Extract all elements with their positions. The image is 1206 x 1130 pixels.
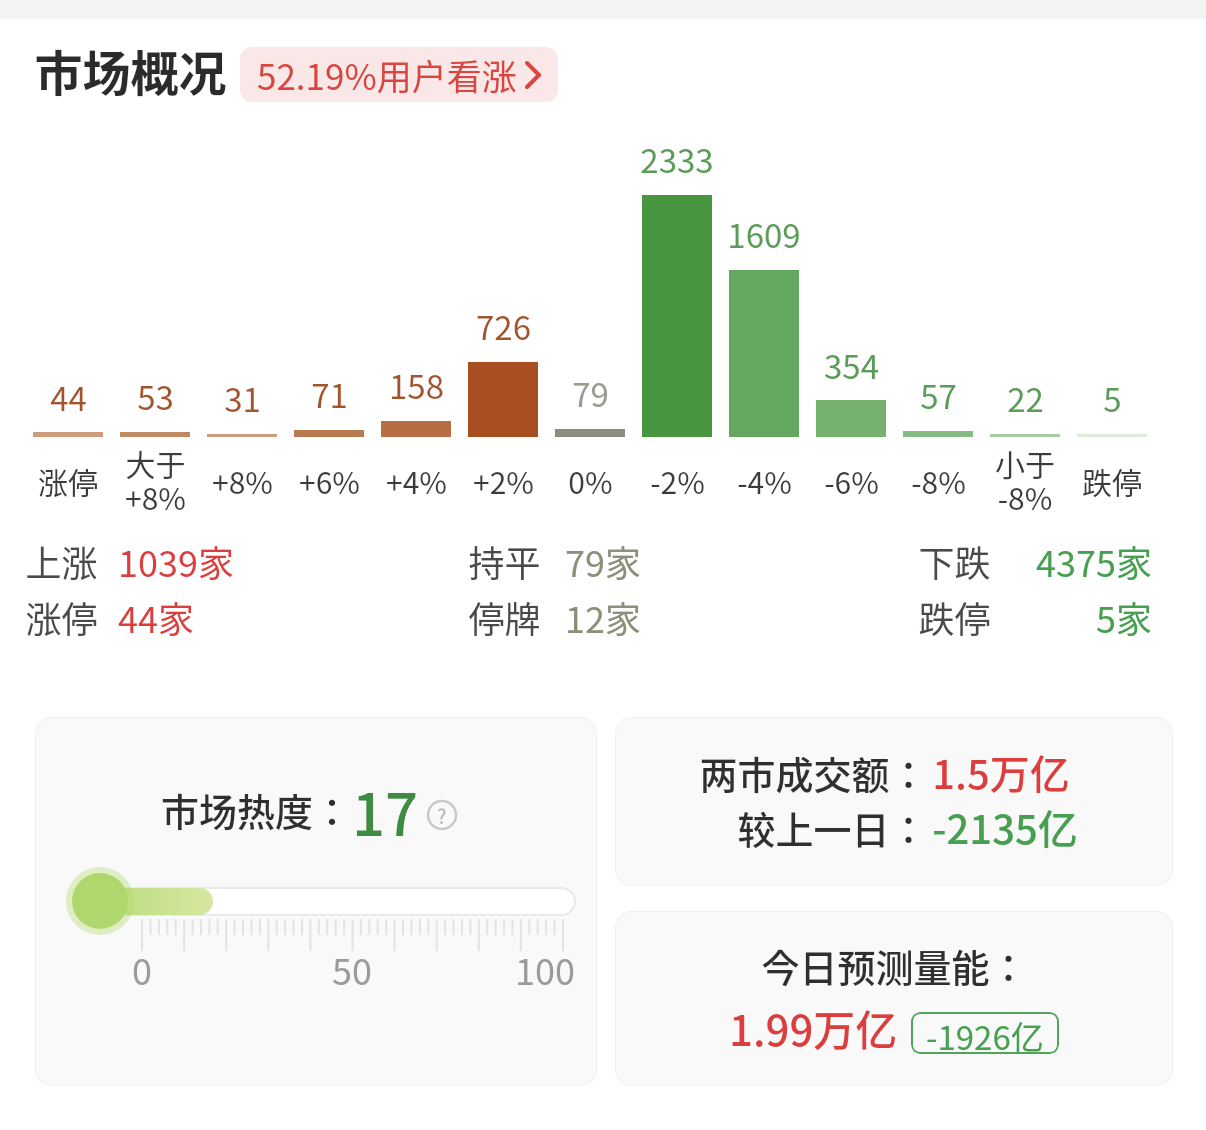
button[interactable]: 52.19%用户看涨 (240, 47, 558, 102)
staticText: 市场热度： (161, 782, 352, 837)
staticText: ? (437, 801, 447, 830)
staticText: 大于 +8% (125, 441, 186, 519)
staticText: 31 (224, 374, 261, 422)
staticText: 较上一日： (737, 800, 928, 855)
staticText: 跌停 (918, 591, 991, 643)
staticText: 726 (476, 302, 531, 350)
staticText: 79家 (565, 535, 641, 587)
staticText: 下跌 (918, 535, 991, 587)
staticText: +2% (473, 459, 534, 502)
staticText: 停牌 (468, 591, 541, 643)
staticText: 1.99万亿 (729, 997, 898, 1058)
staticText: 两市成交额： (699, 745, 928, 800)
button[interactable]: 市场热度： (35, 717, 597, 1086)
staticText: 上涨 (25, 535, 98, 587)
staticText: 22 (1007, 374, 1044, 422)
staticText: 小于 -8% (995, 441, 1055, 519)
staticText: +6% (299, 459, 360, 502)
staticText: -4% (737, 459, 792, 502)
staticText: 2333 (640, 135, 714, 183)
staticText: 1609 (727, 210, 801, 258)
staticText: 71 (311, 370, 348, 418)
staticText: 52.19%用户看涨 (257, 49, 517, 100)
staticText: 17 (352, 769, 419, 849)
staticText: 市场概况 (34, 35, 227, 105)
button[interactable]: 两市成交额： (615, 717, 1173, 886)
staticText: 57 (920, 371, 957, 419)
staticText: 1039家 (118, 535, 234, 587)
staticText: -1926亿 (926, 1012, 1044, 1054)
staticText: -8% (911, 459, 966, 502)
staticText: 44 (50, 373, 87, 421)
staticText: 53 (137, 372, 174, 420)
staticText: -2% (650, 459, 705, 502)
staticText: 0 (132, 943, 152, 995)
staticText: 12家 (565, 591, 641, 643)
staticText: 1.5万亿 (932, 743, 1070, 801)
staticText: 44家 (118, 591, 194, 643)
staticText: 5 (1103, 374, 1122, 422)
staticText: 50 (332, 943, 372, 995)
button[interactable]: 今日预测量能： (615, 911, 1173, 1086)
staticText: -6% (824, 459, 879, 502)
staticText: 跌停 (1082, 459, 1142, 502)
staticText: 5家 (1096, 591, 1152, 643)
staticText: +4% (386, 459, 447, 502)
staticText: 354 (824, 341, 879, 389)
staticText: 4375家 (1036, 535, 1152, 587)
staticText: -2135亿 (932, 798, 1078, 856)
staticText: 158 (389, 361, 444, 409)
staticText: 涨停 (25, 591, 98, 643)
staticText: 今日预测量能： (761, 938, 1028, 993)
staticText: 79 (572, 369, 609, 417)
staticText: +8% (212, 459, 273, 502)
staticText: 0% (568, 459, 613, 502)
staticText: 100 (515, 943, 575, 995)
staticText: 涨停 (38, 459, 98, 502)
staticText: 持平 (468, 535, 541, 587)
